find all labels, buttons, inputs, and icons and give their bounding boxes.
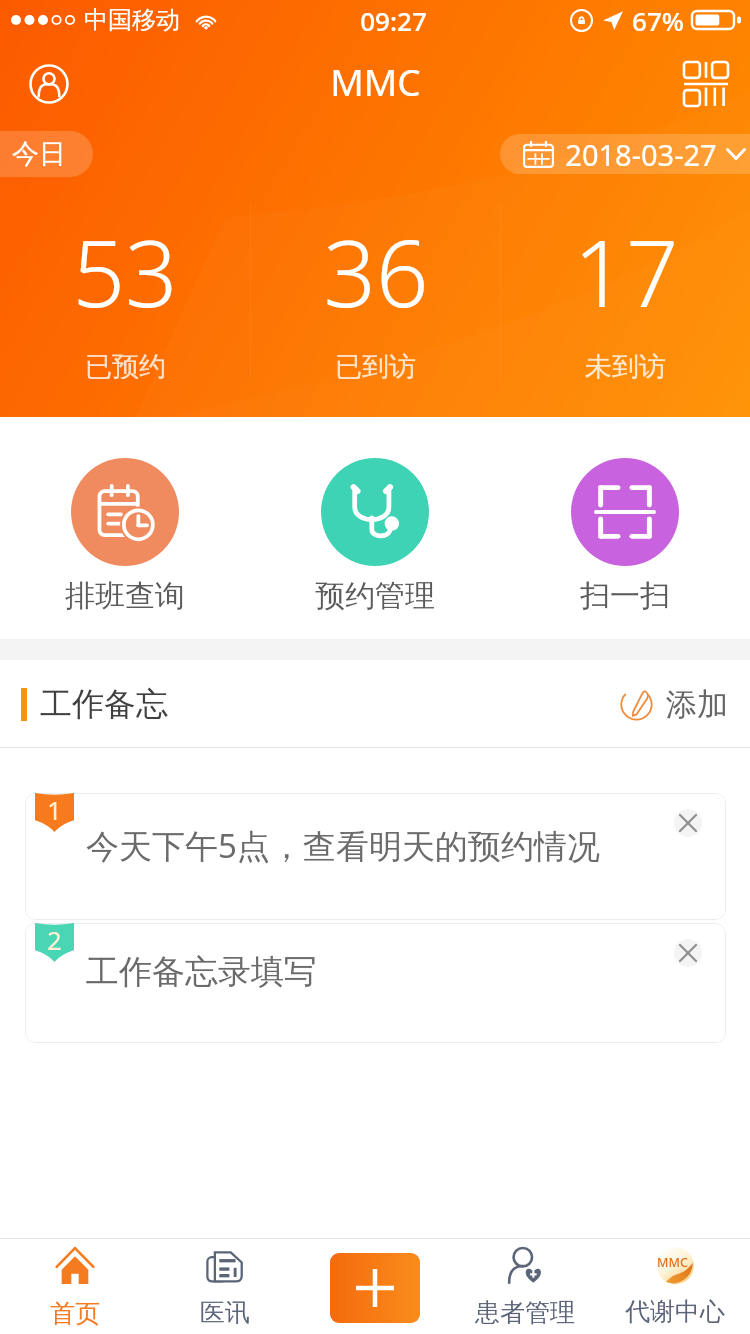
button[interactable]: 医讯 [150,1238,300,1334]
button[interactable]: 今日 [0,131,93,177]
button[interactable]: 预约管理 [250,417,500,639]
button[interactable]: Profile [29,64,69,104]
button[interactable]: 排班查询 [0,417,250,639]
staticText: 扫一扫 [580,577,670,615]
button[interactable]: 工作备忘录填写 [25,923,726,1043]
staticText: 53 [72,209,178,334]
staticText: 工作备忘 [40,684,168,724]
staticText: 17 [573,209,679,334]
button[interactable]: 扫一扫 [500,417,750,639]
button[interactable]: 患者管理 [450,1238,600,1334]
button[interactable]: 首页 [0,1238,150,1334]
staticText: 36 [323,209,429,334]
staticText: MMC [657,1254,688,1271]
staticText: 预约管理 [315,577,435,615]
button[interactable]: 17 [501,204,750,379]
staticText: 未到访 [585,350,666,379]
staticText: 患者管理 [475,1297,575,1328]
staticText: 今天下午5点，查看明天的预约情况 [86,823,600,868]
staticText: 2 [47,923,62,957]
button[interactable]: 36 [251,204,500,379]
staticText: 已预约 [85,350,166,379]
staticText: 1 [47,793,62,827]
button[interactable]: Add [330,1253,420,1323]
button[interactable]: 2018-03-27 [500,134,750,174]
staticText: 医讯 [200,1297,250,1328]
button[interactable]: 今天下午5点，查看明天的预约情况 [25,793,726,920]
staticText: 添加 [666,685,728,724]
staticText: 排班查询 [65,577,185,615]
button[interactable]: MMC [600,1238,750,1334]
staticText: 2018-03-27 [565,135,717,174]
staticText: 中国移动 [84,5,180,35]
staticText: 工作备忘录填写 [86,951,317,993]
staticText: 首页 [50,1298,100,1329]
staticText: 今日 [12,137,66,171]
button[interactable]: 添加 [616,677,732,732]
button[interactable]: Scan QR code [684,62,728,106]
staticText: 代谢中心 [625,1296,725,1327]
staticText: MMC [330,56,421,106]
staticText: 67% [632,3,684,38]
button[interactable]: Delete memo [674,939,702,967]
button[interactable]: 53 [0,204,250,379]
staticText: 09:27 [360,3,427,38]
button[interactable]: Delete memo [674,809,702,837]
staticText: 已到访 [335,350,416,379]
